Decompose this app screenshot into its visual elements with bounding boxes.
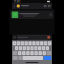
button[interactable]: O (44, 41, 47, 45)
button[interactable]: B (34, 51, 38, 55)
button[interactable]: T (28, 41, 32, 45)
button[interactable]: W (17, 41, 20, 45)
staticText: Q (14, 42, 15, 44)
staticText: F (28, 47, 29, 49)
button[interactable]: Z (18, 51, 21, 55)
button[interactable]: R (24, 41, 28, 45)
button[interactable]: Video Call (44, 5, 47, 7)
staticText: ‹ (14, 3, 15, 9)
button[interactable]: Back (13, 4, 15, 8)
staticText: L (47, 47, 48, 49)
button[interactable]: E (21, 41, 24, 45)
staticText: P (49, 42, 50, 44)
button[interactable]: S (19, 46, 22, 50)
button[interactable]: G (30, 46, 34, 50)
staticText: 9:41 (14, 0, 21, 3)
button[interactable]: N (38, 51, 42, 55)
button[interactable]: F (26, 46, 30, 50)
staticText: K (43, 47, 44, 49)
staticText: E (22, 42, 23, 44)
button[interactable]: J (38, 46, 41, 50)
staticText: W (18, 42, 19, 44)
button[interactable]: H (34, 46, 37, 50)
button[interactable]: D (23, 46, 26, 50)
button[interactable]: I (40, 41, 43, 45)
button[interactable]: U (36, 41, 39, 45)
button[interactable]: Space (22, 56, 43, 60)
button[interactable]: Y (32, 41, 36, 45)
staticText: R (26, 42, 27, 44)
staticText: Z (19, 52, 20, 54)
button[interactable]: Emoji (18, 56, 22, 60)
button[interactable]: L (46, 46, 49, 50)
button[interactable]: Contact (17, 4, 20, 8)
button[interactable]: P (48, 41, 51, 45)
staticText: D (24, 47, 25, 49)
button[interactable]: Add Attachment (13, 36, 16, 39)
staticText: H (35, 47, 36, 49)
button[interactable]: Q (13, 41, 16, 45)
button[interactable]: K (42, 46, 45, 50)
button[interactable]: M (42, 51, 46, 55)
button[interactable]: V (30, 51, 34, 55)
button[interactable]: Numbers (13, 56, 18, 60)
staticText: A (16, 47, 17, 49)
staticText: S (20, 47, 21, 49)
button[interactable]: A (15, 46, 18, 50)
staticText: U (37, 42, 38, 44)
button[interactable]: C (26, 51, 30, 55)
staticText: O (45, 42, 46, 44)
button[interactable]: X (22, 51, 26, 55)
